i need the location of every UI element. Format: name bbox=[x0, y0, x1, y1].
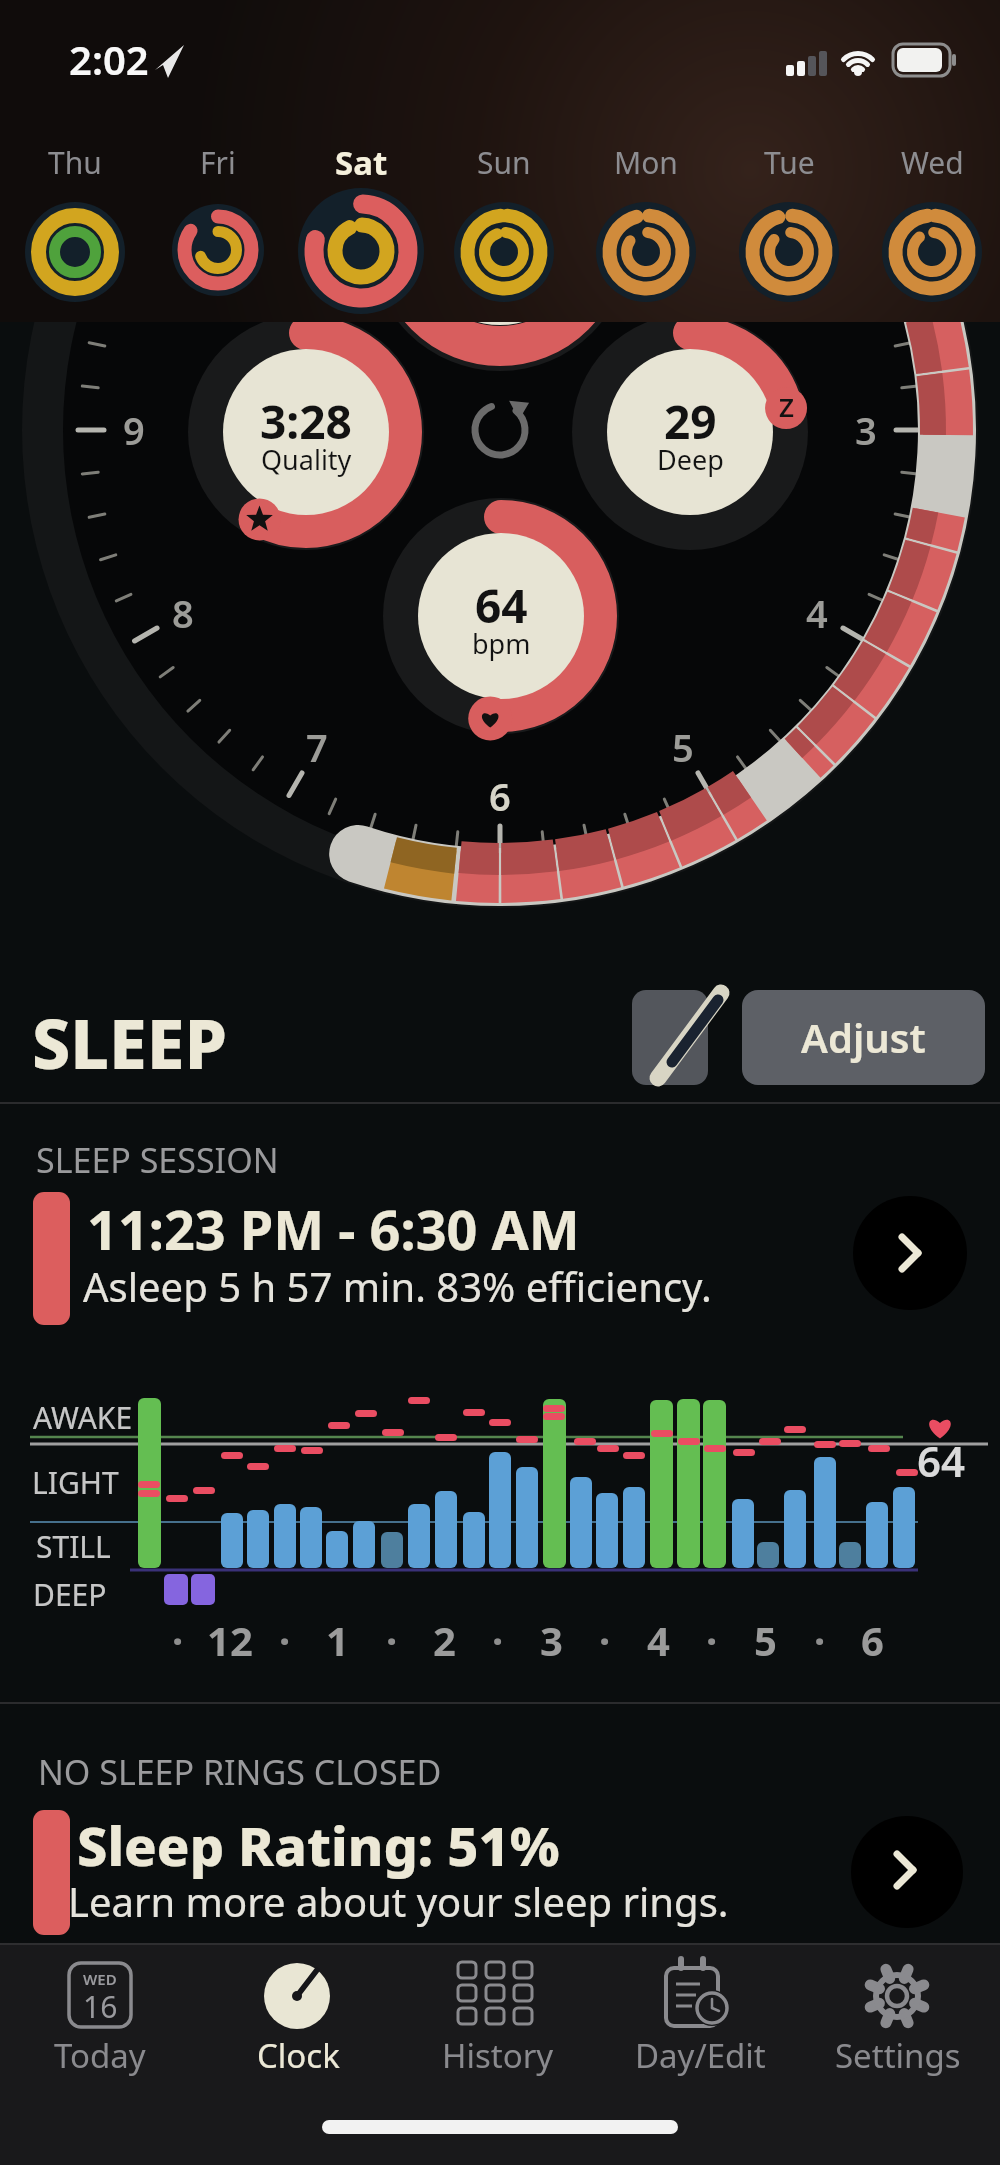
staticText: 6 bbox=[861, 1613, 884, 1667]
button[interactable] bbox=[20, 1800, 980, 1943]
staticText: bpm bbox=[472, 625, 531, 662]
staticText: Clock bbox=[257, 2033, 340, 2078]
button[interactable] bbox=[724, 118, 854, 314]
staticText: 9 bbox=[123, 404, 145, 456]
staticText: 29 bbox=[664, 390, 717, 453]
staticText: 12 bbox=[207, 1613, 253, 1667]
staticText: Sun bbox=[477, 142, 531, 183]
button[interactable] bbox=[581, 118, 711, 314]
staticText: 7 bbox=[306, 721, 328, 773]
staticText: WED bbox=[83, 1969, 117, 1989]
staticText: 6 bbox=[489, 770, 511, 822]
staticText: LIGHT bbox=[32, 1462, 119, 1503]
staticText: Learn more about your sleep rings. bbox=[68, 1874, 729, 1928]
button[interactable] bbox=[218, 1950, 378, 2080]
button[interactable] bbox=[439, 118, 569, 314]
staticText: 64 bbox=[917, 1432, 966, 1489]
staticText: · bbox=[492, 1613, 504, 1667]
button[interactable] bbox=[296, 118, 426, 314]
staticText: 11:23 PM - 6:30 AM bbox=[87, 1192, 580, 1266]
staticText: 2:02 bbox=[69, 32, 149, 86]
staticText: 3:28 bbox=[260, 390, 352, 453]
staticText: · bbox=[386, 1613, 398, 1667]
staticText: SLEEP SESSION bbox=[36, 1137, 279, 1183]
staticText: Fri bbox=[200, 142, 236, 183]
staticText: Mon bbox=[614, 142, 678, 183]
staticText: 3 bbox=[540, 1613, 563, 1667]
staticText: 16 bbox=[83, 1986, 118, 2027]
staticText: SLEEP bbox=[32, 996, 228, 1089]
staticText: Adjust bbox=[801, 1010, 926, 1064]
staticText: · bbox=[172, 1613, 184, 1667]
staticText: Sleep Rating: 51% bbox=[77, 1808, 560, 1882]
staticText: · bbox=[814, 1613, 826, 1667]
button[interactable] bbox=[742, 990, 985, 1085]
staticText: Today bbox=[54, 2033, 146, 2078]
button[interactable] bbox=[818, 1950, 978, 2080]
button[interactable] bbox=[10, 118, 140, 314]
staticText: Z bbox=[779, 389, 794, 424]
staticText: DEEP bbox=[33, 1574, 107, 1615]
staticText: Deep bbox=[657, 441, 724, 478]
staticText: STILL bbox=[36, 1526, 111, 1567]
staticText: 64 bbox=[475, 574, 528, 637]
button[interactable] bbox=[153, 118, 283, 314]
staticText: Thu bbox=[48, 142, 102, 183]
staticText: Tue bbox=[764, 142, 815, 183]
staticText: AWAKE bbox=[33, 1397, 133, 1438]
staticText: Quality bbox=[261, 441, 352, 478]
staticText: NO SLEEP RINGS CLOSED bbox=[38, 1749, 442, 1795]
staticText: · bbox=[279, 1613, 291, 1667]
staticText: 4 bbox=[806, 587, 828, 639]
staticText: History bbox=[442, 2033, 554, 2078]
staticText: 4 bbox=[647, 1613, 670, 1667]
staticText: 2 bbox=[433, 1613, 456, 1667]
staticText: Settings bbox=[835, 2033, 961, 2078]
button[interactable] bbox=[620, 1950, 780, 2080]
button[interactable] bbox=[632, 990, 708, 1085]
staticText: 3 bbox=[855, 404, 877, 456]
staticText: · bbox=[706, 1613, 718, 1667]
staticText: 5 bbox=[754, 1613, 777, 1667]
staticText: 5 bbox=[672, 721, 694, 773]
button[interactable] bbox=[418, 1950, 578, 2080]
staticText: Wed bbox=[901, 142, 964, 183]
staticText: Day/Edit bbox=[635, 2033, 766, 2078]
staticText: · bbox=[599, 1613, 611, 1667]
staticText: 1 bbox=[326, 1613, 349, 1667]
staticText: Sat bbox=[335, 140, 388, 185]
staticText: 8 bbox=[172, 587, 194, 639]
staticText: Asleep 5 h 57 min. 83% efficiency. bbox=[83, 1259, 712, 1313]
button[interactable] bbox=[867, 118, 997, 314]
button[interactable] bbox=[20, 1180, 980, 1335]
button[interactable] bbox=[20, 1950, 180, 2080]
